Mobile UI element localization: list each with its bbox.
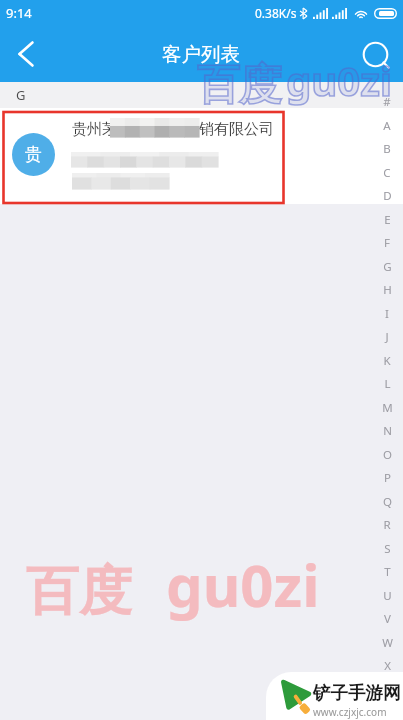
button[interactable]: Y bbox=[380, 678, 394, 702]
button[interactable]: Z bbox=[380, 701, 394, 720]
staticText: Y bbox=[384, 682, 391, 698]
staticText: N bbox=[383, 423, 392, 439]
staticText: H bbox=[383, 282, 392, 298]
staticText: 百度 bbox=[26, 558, 132, 625]
staticText: www.czjxjc.com bbox=[313, 705, 387, 719]
button[interactable]: E bbox=[380, 208, 394, 232]
staticText: U bbox=[383, 588, 392, 604]
staticText: X bbox=[384, 658, 391, 674]
button[interactable]: I bbox=[380, 302, 394, 326]
button[interactable]: W bbox=[380, 631, 394, 655]
staticText: W bbox=[382, 635, 393, 651]
staticText: M bbox=[382, 400, 393, 416]
staticText: # bbox=[383, 94, 391, 110]
button[interactable]: 贵 bbox=[0, 108, 403, 204]
staticText: K bbox=[383, 353, 391, 369]
staticText: L bbox=[384, 376, 391, 392]
button[interactable]: Search bbox=[351, 25, 403, 82]
button[interactable]: V bbox=[380, 607, 394, 631]
staticText: I bbox=[385, 306, 389, 322]
staticText: A bbox=[383, 118, 391, 134]
staticText: 0.38K/s bbox=[255, 5, 297, 21]
staticText: S bbox=[384, 541, 391, 557]
staticText: gu0zi bbox=[286, 53, 392, 107]
staticText: 销有限公司 bbox=[199, 120, 274, 139]
staticText: 客户列表 bbox=[162, 42, 240, 67]
staticText: gu0zi bbox=[166, 545, 320, 624]
staticText: P bbox=[384, 470, 391, 486]
staticText: 百度 bbox=[197, 59, 281, 112]
staticText: 贵 bbox=[25, 144, 42, 165]
staticText: G bbox=[383, 259, 392, 275]
staticText: 铲子手游网 bbox=[313, 682, 401, 704]
button[interactable]: M bbox=[380, 396, 394, 420]
button[interactable]: P bbox=[380, 466, 394, 490]
button[interactable]: N bbox=[380, 419, 394, 443]
staticText: T bbox=[384, 564, 391, 580]
button[interactable]: D bbox=[380, 184, 394, 208]
button[interactable]: Q bbox=[380, 490, 394, 514]
staticText: Q bbox=[383, 494, 392, 510]
button[interactable]: S bbox=[380, 537, 394, 561]
staticText: 百度 bbox=[197, 59, 281, 112]
button[interactable]: T bbox=[380, 560, 394, 584]
staticText: G bbox=[16, 86, 26, 104]
button[interactable]: B bbox=[380, 137, 394, 161]
button[interactable]: Back bbox=[0, 25, 52, 82]
staticText: B bbox=[383, 141, 391, 157]
button[interactable]: C bbox=[380, 161, 394, 185]
staticText: 9:14 bbox=[6, 4, 32, 22]
button[interactable]: A bbox=[380, 114, 394, 138]
button[interactable]: G bbox=[380, 255, 394, 279]
staticText: J bbox=[385, 329, 389, 345]
button[interactable]: # bbox=[380, 90, 394, 114]
staticText: R bbox=[383, 517, 391, 533]
staticText: Z bbox=[384, 705, 391, 720]
staticText: E bbox=[384, 212, 391, 228]
staticText: 贵州茅 bbox=[72, 120, 117, 139]
button[interactable]: F bbox=[380, 231, 394, 255]
button[interactable]: L bbox=[380, 372, 394, 396]
button[interactable]: J bbox=[380, 325, 394, 349]
staticText: O bbox=[383, 447, 392, 463]
button[interactable]: H bbox=[380, 278, 394, 302]
staticText: C bbox=[383, 165, 391, 181]
staticText: F bbox=[384, 235, 390, 251]
button[interactable]: X bbox=[380, 654, 394, 678]
staticText: V bbox=[384, 611, 391, 627]
button[interactable]: O bbox=[380, 443, 394, 467]
button[interactable]: U bbox=[380, 584, 394, 608]
staticText: gu0zi bbox=[286, 53, 392, 107]
button[interactable]: R bbox=[380, 513, 394, 537]
button[interactable]: K bbox=[380, 349, 394, 373]
staticText: D bbox=[383, 188, 392, 204]
